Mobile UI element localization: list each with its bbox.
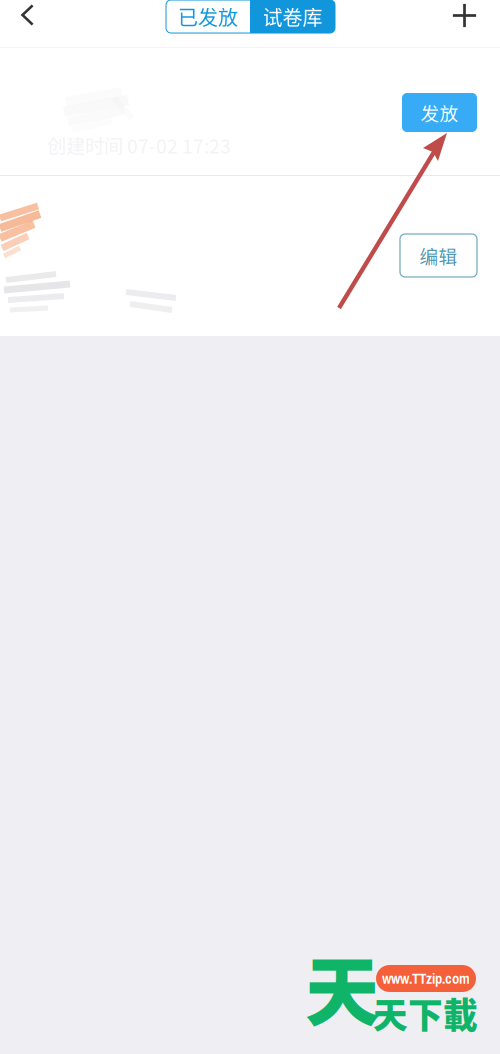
staticText: 已发放: [178, 2, 238, 31]
button[interactable]: Add: [452, 3, 477, 28]
staticText: 创建时间 07-02 17:23: [47, 131, 231, 159]
staticText: 发放: [420, 99, 458, 126]
button[interactable]: 编辑: [400, 234, 477, 277]
button[interactable]: Back: [21, 4, 34, 26]
button[interactable]: 试卷库: [250, 0, 335, 33]
button[interactable]: 发放: [402, 93, 477, 132]
staticText: 天: [305, 933, 380, 1041]
button[interactable]: 已发放: [166, 0, 250, 33]
staticText: 天下載: [373, 988, 478, 1038]
staticText: www.TTzip.com: [382, 969, 470, 988]
staticText: 试卷库: [262, 2, 322, 31]
staticText: 编辑: [419, 242, 457, 269]
